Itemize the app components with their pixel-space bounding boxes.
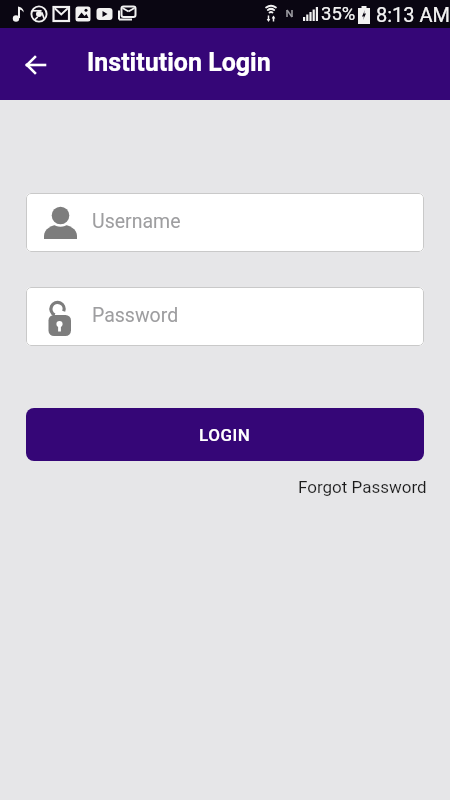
button[interactable]: [0, 28, 56, 100]
staticText: 35%: [321, 3, 356, 25]
staticText: Username: [92, 210, 181, 233]
staticText: Institution Login: [87, 48, 271, 77]
staticText: Password: [92, 304, 179, 327]
staticText: Forgot Password: [298, 477, 427, 497]
button[interactable]: Password: [26, 287, 424, 346]
button[interactable]: Forgot Password: [298, 477, 427, 497]
staticText: 8:13 AM: [376, 3, 450, 26]
button[interactable]: Username: [26, 193, 424, 252]
button[interactable]: LOGIN: [26, 408, 424, 461]
staticText: LOGIN: [199, 425, 251, 445]
